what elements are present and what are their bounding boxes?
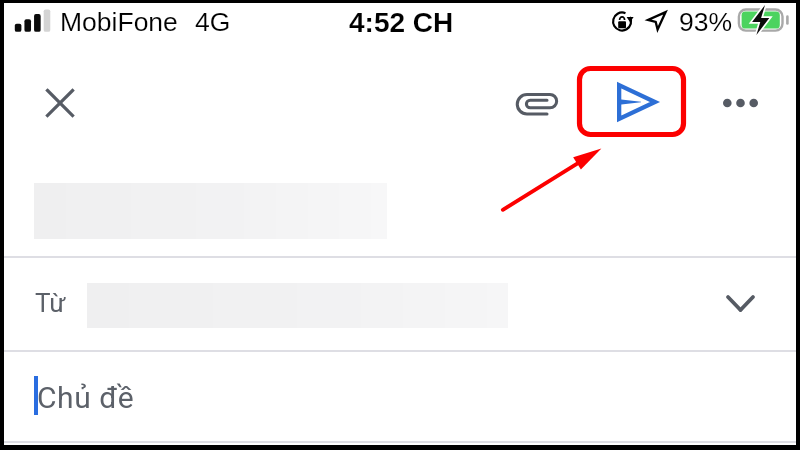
button[interactable]: From field <box>4 258 796 350</box>
button[interactable]: More options <box>714 79 766 127</box>
button[interactable]: Subject field <box>4 355 796 441</box>
staticText: Chủ đề <box>37 380 135 415</box>
staticText: 93% <box>679 7 733 37</box>
staticText: MobiFone <box>60 7 178 37</box>
button[interactable]: Expand recipient fields <box>712 275 768 331</box>
staticText: Từ <box>35 288 66 318</box>
staticText: 4:52 CH <box>349 7 454 38</box>
button[interactable]: Close <box>35 78 85 128</box>
staticText: 4G <box>195 7 231 37</box>
button[interactable]: Send <box>607 74 667 130</box>
button[interactable]: Attach file <box>508 84 566 128</box>
